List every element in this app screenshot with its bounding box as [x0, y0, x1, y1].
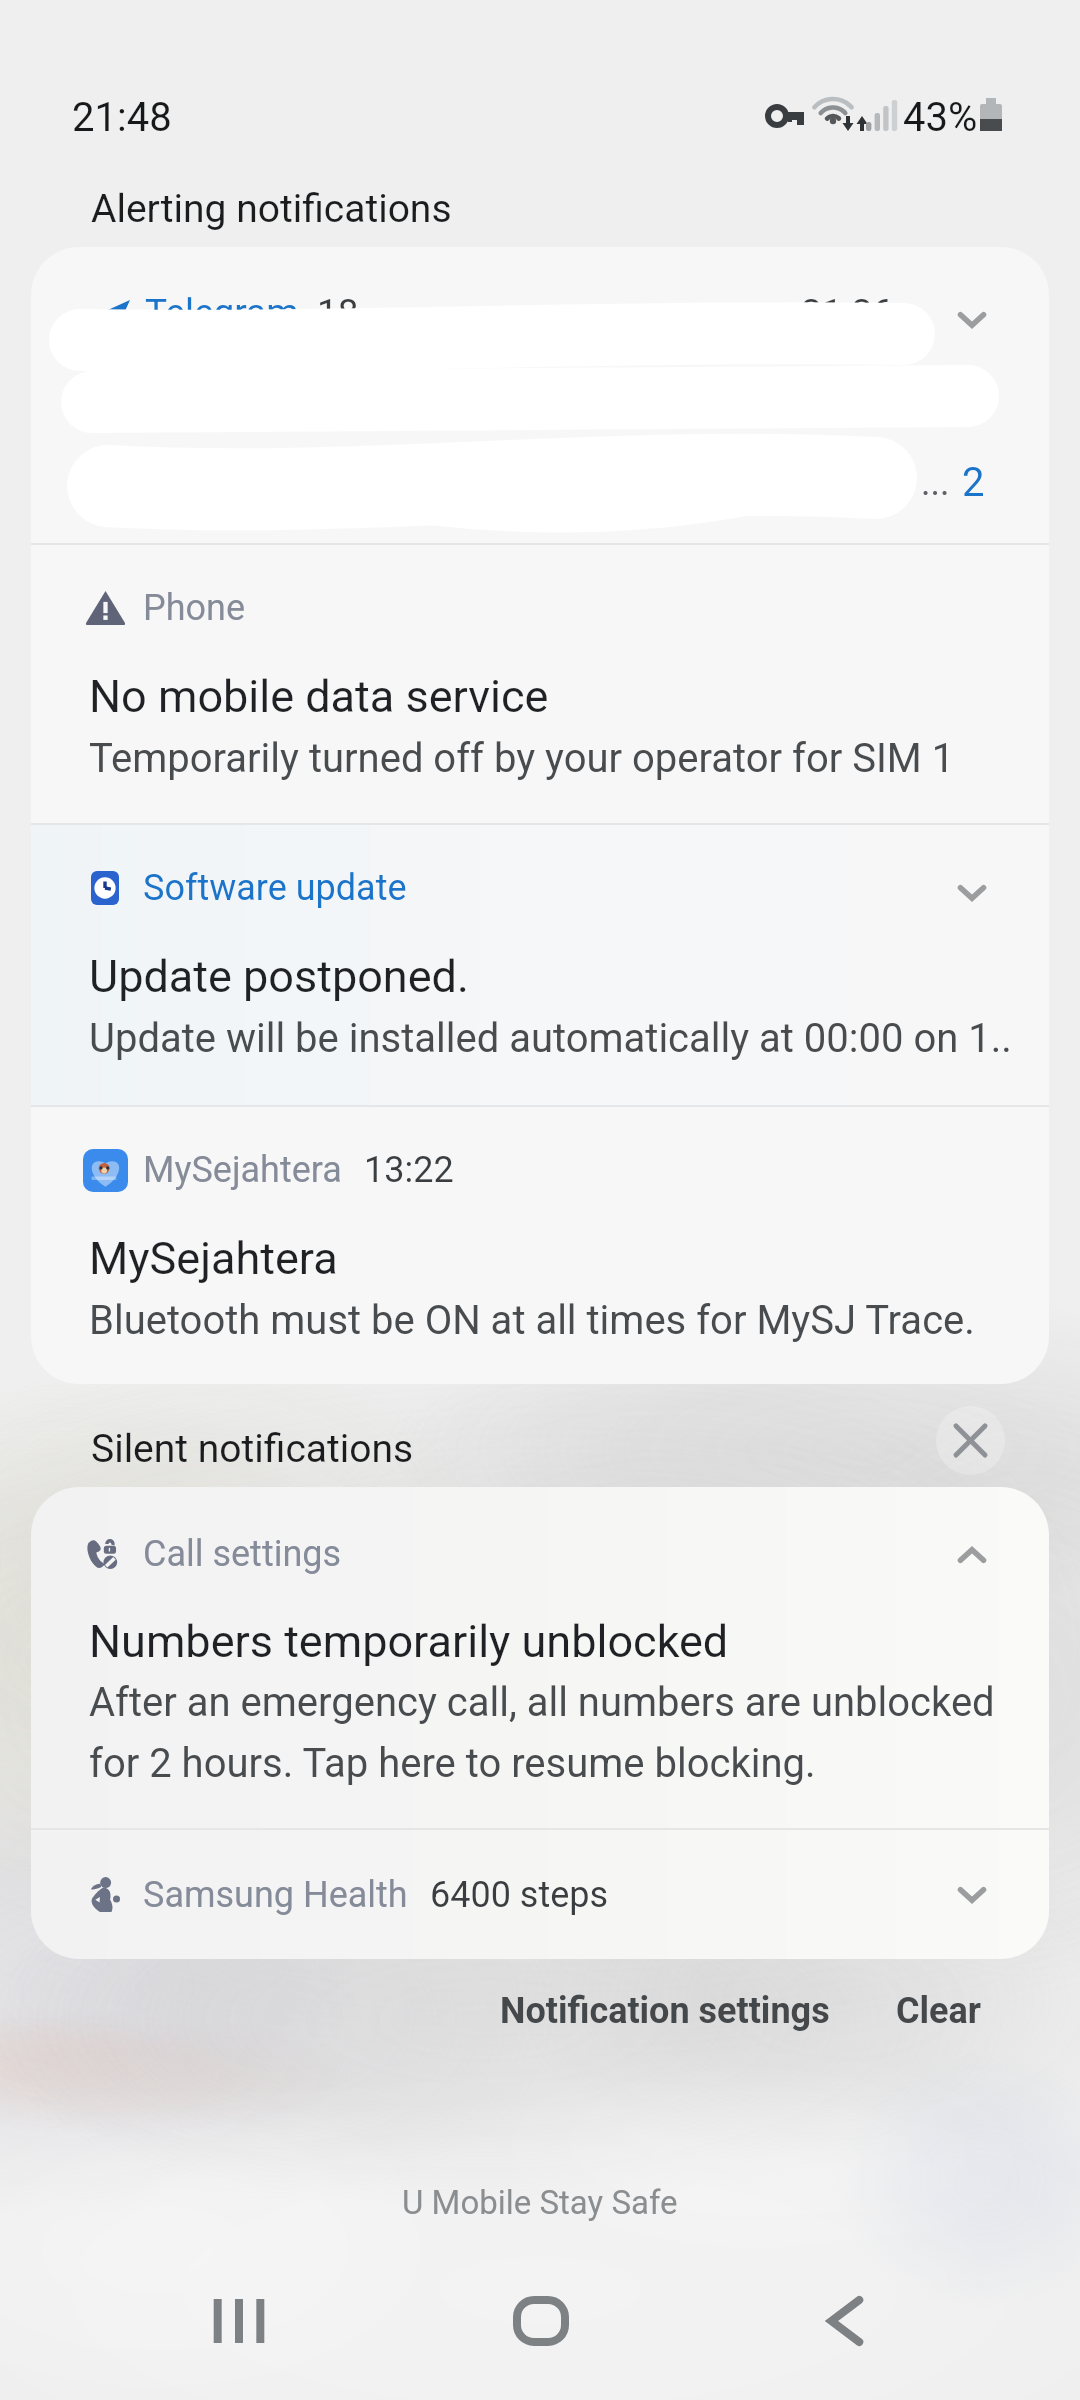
button[interactable]: Telegram — [31, 247, 1049, 543]
staticText: MySejahtera — [89, 1232, 338, 1285]
staticText: Bluetooth must be ON at all times for My… — [89, 1297, 975, 1344]
button[interactable]: Expand — [927, 848, 1017, 938]
staticText: Update will be installed automatically a… — [89, 1015, 1012, 1062]
staticText: ... — [921, 462, 950, 504]
button[interactable]: Collapse — [927, 1510, 1017, 1600]
button[interactable]: Call settings — [31, 1487, 1049, 1828]
staticText: After an emergency call, all numbers are… — [89, 1679, 995, 1726]
staticText: Call settings — [143, 1533, 342, 1575]
staticText: 21:48 — [72, 94, 172, 141]
staticText: Notification settings — [500, 1990, 830, 2032]
staticText: Software update — [143, 867, 407, 909]
staticText: Clear — [896, 1990, 981, 2032]
staticText: 21:26 — [801, 291, 894, 334]
staticText: U Mobile Stay Safe — [402, 2183, 678, 2222]
button[interactable]: Notification settings — [484, 1974, 846, 2048]
staticText: Numbers temporarily unblocked — [89, 1615, 729, 1668]
staticText: for 2 hours. Tap here to resume blocking… — [89, 1740, 816, 1787]
button[interactable]: Recent apps — [149, 2242, 329, 2400]
staticText: MySejahtera — [143, 1149, 342, 1191]
staticText: 18 — [317, 291, 359, 334]
staticText: Samsung Health — [143, 1874, 408, 1916]
button[interactable]: MySejahtera — [31, 1107, 1049, 1384]
button[interactable]: Home — [451, 2241, 631, 2400]
staticText: Temporarily turned off by your operator … — [89, 735, 955, 782]
button[interactable]: Back — [755, 2241, 935, 2400]
button[interactable]: Phone — [31, 545, 1049, 823]
button[interactable]: Samsung Health — [31, 1830, 1049, 1959]
button[interactable]: Expand — [927, 1850, 1017, 1940]
button[interactable]: Expand — [927, 275, 1017, 365]
staticText: Alerting notifications — [91, 186, 452, 232]
staticText: Silent notifications — [91, 1426, 414, 1472]
staticText: No mobile data service — [89, 670, 549, 723]
staticText: Update postponed. — [89, 950, 469, 1003]
staticText: 13:22 — [364, 1149, 454, 1191]
staticText: Phone — [143, 587, 246, 629]
staticText: Telegram — [145, 291, 299, 334]
button[interactable]: Clear — [880, 1974, 997, 2048]
button[interactable]: Software update — [31, 825, 1049, 1105]
button[interactable]: Dismiss silent notifications — [936, 1406, 1005, 1475]
staticText: 43% — [903, 94, 978, 141]
staticText: 6400 steps — [430, 1874, 609, 1916]
staticText: 2 — [962, 459, 985, 506]
